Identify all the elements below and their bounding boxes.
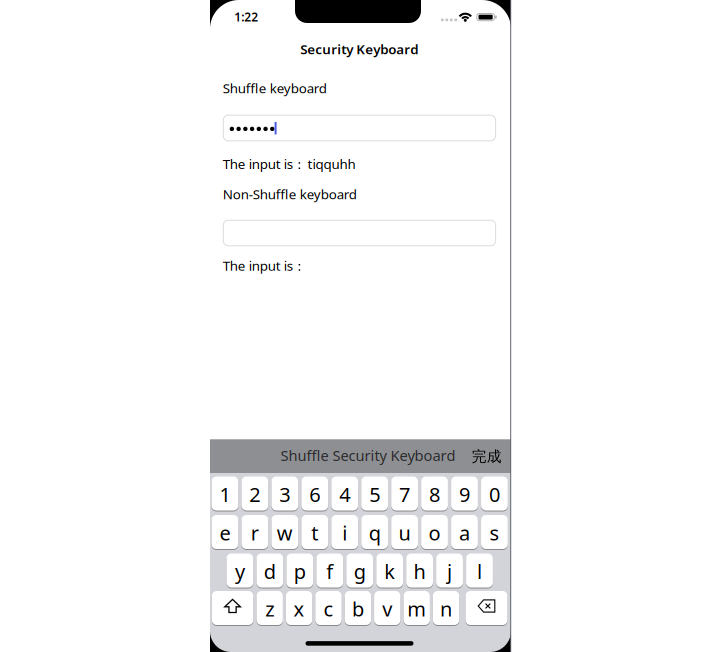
staticText: 8 (429, 481, 440, 508)
staticText: q (369, 519, 381, 546)
button[interactable]: 1 (211, 476, 238, 511)
staticText: n (440, 595, 452, 622)
button[interactable]: Shuffle keyboard text field (223, 115, 496, 141)
button[interactable]: r (241, 514, 268, 549)
staticText: i (342, 519, 347, 546)
staticText: v (382, 595, 392, 622)
button[interactable]: b (345, 590, 371, 625)
button[interactable]: 完成 (464, 440, 510, 473)
staticText: Shuffle Security Keyboard (280, 446, 455, 465)
staticText: The input is： (223, 257, 306, 275)
button[interactable]: 4 (331, 476, 358, 511)
button[interactable]: s (481, 514, 508, 549)
button[interactable]: e (211, 514, 238, 549)
button[interactable]: q (361, 514, 388, 549)
button[interactable]: a (451, 514, 478, 549)
staticText: s (489, 519, 499, 546)
button[interactable]: 2 (241, 476, 268, 511)
button[interactable]: v (374, 590, 400, 625)
button[interactable]: 7 (391, 476, 418, 511)
staticText: 3 (279, 481, 290, 508)
button[interactable]: 3 (271, 476, 298, 511)
staticText: l (477, 558, 482, 585)
button[interactable]: 5 (361, 476, 388, 511)
button[interactable]: z (256, 590, 283, 625)
button[interactable]: n (433, 590, 459, 625)
staticText: Shuffle keyboard (223, 79, 327, 97)
button[interactable]: j (436, 553, 463, 588)
button[interactable]: k (376, 553, 403, 588)
button[interactable]: t (301, 514, 328, 549)
staticText: 9 (459, 481, 470, 508)
button[interactable]: y (226, 553, 253, 588)
button[interactable]: d (256, 553, 283, 588)
staticText: b (352, 595, 364, 622)
staticText: 4 (339, 481, 350, 508)
staticText: 6 (309, 481, 320, 508)
staticText: Non-Shuffle keyboard (223, 185, 357, 203)
staticText: k (384, 558, 395, 585)
staticText: o (428, 519, 440, 546)
staticText: Security Keyboard (300, 40, 418, 58)
staticText: j (447, 558, 452, 585)
staticText: 完成 (472, 448, 502, 466)
button[interactable]: i (331, 514, 358, 549)
staticText: p (294, 558, 306, 585)
button[interactable]: h (406, 553, 433, 588)
button[interactable]: f (316, 553, 343, 588)
staticText: 1:22 (234, 9, 258, 25)
staticText: The input is： (223, 155, 306, 173)
staticText: t (311, 519, 318, 546)
staticText: h (414, 558, 426, 585)
staticText: tiqquhh (308, 155, 356, 173)
button[interactable]: Delete (465, 590, 507, 625)
staticText: f (326, 558, 333, 585)
button[interactable]: 6 (301, 476, 328, 511)
button[interactable]: w (271, 514, 298, 549)
button[interactable]: u (391, 514, 418, 549)
staticText: u (399, 519, 411, 546)
button[interactable]: 9 (451, 476, 478, 511)
button[interactable]: 8 (421, 476, 448, 511)
staticText: w (277, 519, 293, 546)
button[interactable]: Shift (212, 590, 253, 625)
button[interactable]: Non-Shuffle keyboard text field (223, 220, 496, 246)
staticText: z (265, 595, 274, 622)
staticText: 1 (219, 481, 230, 508)
staticText: m (407, 595, 426, 622)
staticText: c (323, 595, 333, 622)
button[interactable]: x (286, 590, 312, 625)
staticText: 7 (399, 481, 410, 508)
staticText: y (235, 558, 245, 585)
staticText: d (264, 558, 276, 585)
button[interactable]: g (346, 553, 373, 588)
staticText: 2 (249, 481, 260, 508)
button[interactable]: l (466, 553, 493, 588)
button[interactable]: c (315, 590, 342, 625)
staticText: e (219, 519, 230, 546)
button[interactable]: p (286, 553, 313, 588)
staticText: g (354, 558, 366, 585)
staticText: r (251, 519, 259, 546)
button[interactable]: o (421, 514, 448, 549)
button[interactable]: m (403, 590, 430, 625)
staticText: x (294, 595, 305, 622)
staticText: 0 (489, 481, 500, 508)
staticText: 5 (369, 481, 380, 508)
button[interactable]: 0 (481, 476, 508, 511)
staticText: a (459, 519, 470, 546)
